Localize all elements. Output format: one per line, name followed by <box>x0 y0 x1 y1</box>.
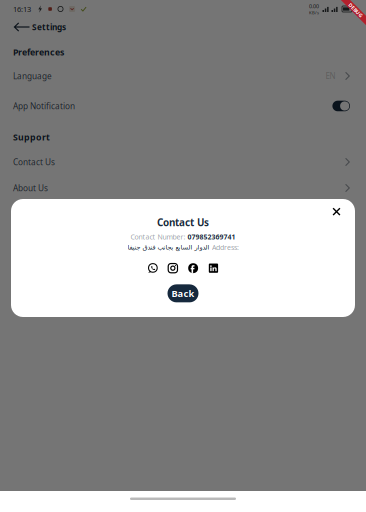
staticText: 079852369741 <box>187 232 235 241</box>
button[interactable]: Back <box>13 18 31 36</box>
staticText: App Notification <box>13 100 75 112</box>
staticText: Settings <box>32 21 66 33</box>
staticText: الدوار السابع بجانب فندق جنيفا <box>127 243 209 251</box>
button[interactable]: About Us <box>0 176 366 200</box>
staticText: Contact Us <box>157 216 209 229</box>
staticText: Support <box>13 131 50 143</box>
button[interactable]: Close <box>323 203 355 225</box>
button[interactable]: App Notification <box>332 101 350 111</box>
button[interactable]: Contact Us <box>0 150 366 174</box>
button[interactable]: LinkedIn <box>208 263 219 273</box>
staticText: DEBUG <box>347 7 365 14</box>
staticText: Language <box>13 70 52 82</box>
staticText: EN <box>326 70 336 81</box>
button[interactable]: Facebook <box>188 263 198 273</box>
staticText: About Us <box>13 182 48 194</box>
button[interactable]: Instagram <box>168 263 178 273</box>
button[interactable]: WhatsApp <box>147 263 158 273</box>
button[interactable]: Language <box>0 64 366 88</box>
staticText: Contact Us <box>13 156 55 168</box>
button[interactable]: Back <box>167 284 198 302</box>
staticText: Address: <box>212 242 239 252</box>
staticText: 16:13 <box>13 4 31 14</box>
staticText: Contact Number: <box>130 232 187 241</box>
staticText: Back <box>171 287 194 300</box>
staticText: KB/s <box>309 10 319 15</box>
staticText: 0.00 <box>309 2 319 10</box>
staticText: Preferences <box>13 46 64 58</box>
